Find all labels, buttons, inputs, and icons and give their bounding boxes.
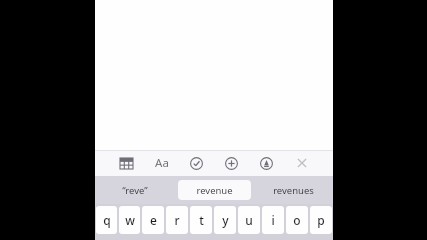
- staticText: revenues: [273, 184, 314, 197]
- button[interactable]: t: [190, 206, 212, 234]
- staticText: e: [150, 212, 157, 228]
- staticText: “reve”: [122, 184, 148, 197]
- button[interactable]: q: [96, 206, 117, 234]
- button[interactable]: Close keyboard: [284, 150, 319, 176]
- button[interactable]: “reve”: [98, 180, 172, 200]
- button[interactable]: e: [142, 206, 164, 234]
- staticText: w: [125, 212, 135, 228]
- staticText: r: [174, 212, 180, 228]
- button[interactable]: u: [238, 206, 260, 234]
- button[interactable]: Checklist: [179, 150, 214, 176]
- staticText: i: [271, 212, 275, 228]
- button[interactable]: p: [310, 206, 332, 234]
- staticText: Aa: [155, 155, 169, 171]
- staticText: revenue: [196, 184, 233, 197]
- staticText: q: [103, 212, 111, 228]
- button[interactable]: Insert table: [109, 150, 144, 176]
- button[interactable]: Insert: [214, 150, 249, 176]
- button[interactable]: r: [166, 206, 188, 234]
- button[interactable]: y: [214, 206, 236, 234]
- button[interactable]: w: [119, 206, 140, 234]
- button[interactable]: o: [286, 206, 308, 234]
- staticText: u: [245, 212, 253, 228]
- staticText: y: [222, 212, 229, 228]
- button[interactable]: Markup: [249, 150, 284, 176]
- button[interactable]: Text format: [144, 150, 179, 176]
- staticText: t: [199, 212, 204, 228]
- staticText: o: [293, 212, 301, 228]
- staticText: p: [317, 212, 325, 228]
- button[interactable]: revenues: [257, 180, 330, 200]
- button[interactable]: i: [262, 206, 284, 234]
- button[interactable]: revenue: [178, 180, 251, 200]
